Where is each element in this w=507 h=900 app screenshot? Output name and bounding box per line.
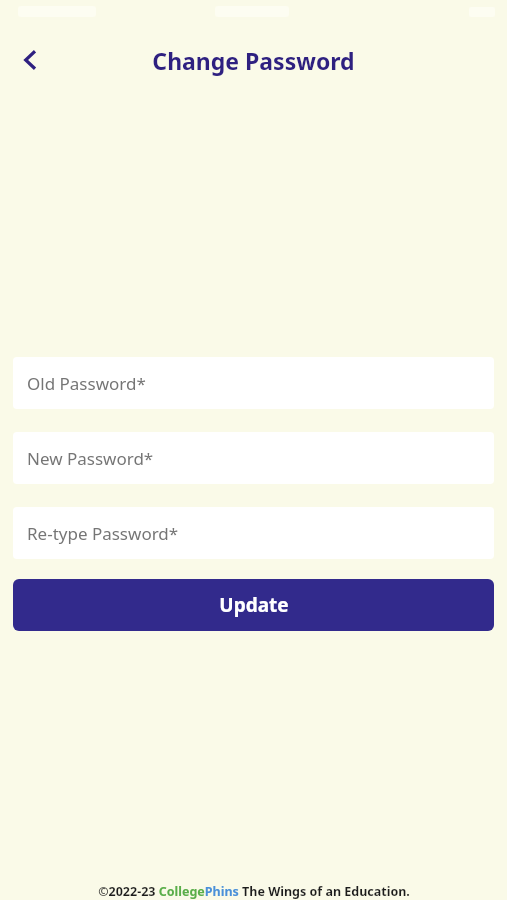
button[interactable]: New Password* [13,432,494,484]
staticText: New Password* [27,447,154,470]
button[interactable]: Old Password* [13,357,494,409]
staticText: Change Password [152,45,355,76]
button[interactable]: Re-type Password* [13,507,494,559]
button[interactable]: Update [13,579,494,631]
staticText: Re-type Password* [27,522,179,545]
staticText: Update [219,592,289,618]
staticText: ©2022-23 CollegePhins The Wings of an Ed… [98,883,410,900]
staticText: Old Password* [27,372,146,395]
button[interactable]: Back [6,36,54,84]
